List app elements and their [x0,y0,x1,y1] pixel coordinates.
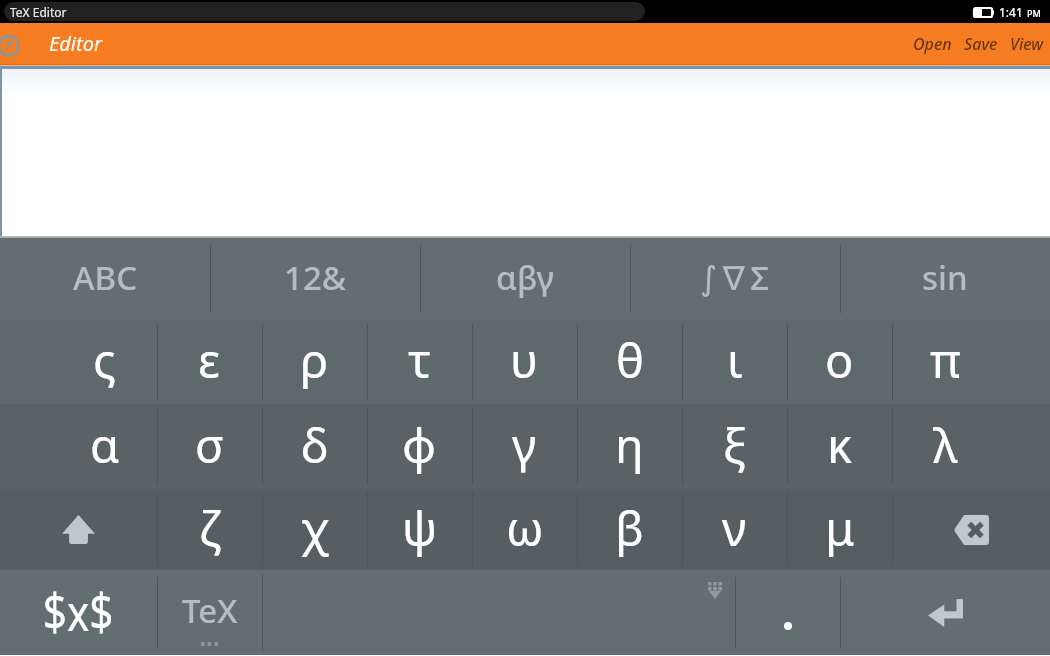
staticText: ζ [199,496,221,560]
button[interactable]: Enter [840,570,1050,655]
button[interactable]: Period [735,570,840,655]
staticText: π [930,328,961,392]
staticText: σ [195,413,224,477]
staticText: δ [301,413,329,477]
button[interactable]: α [0,404,157,489]
button[interactable]: φ [367,404,472,489]
staticText: ξ [723,413,747,477]
button[interactable]: ∫ ∇ Σ [630,238,840,320]
staticText: γ [512,413,537,477]
button[interactable]: ι [682,320,787,404]
staticText: ∫ ∇ Σ [700,255,770,300]
button[interactable]: λ [892,404,1050,489]
staticText: Open [913,33,952,55]
staticText: ε [198,328,221,392]
button[interactable]: θ [577,320,682,404]
staticText: $x$ [43,576,114,647]
staticText: ? [5,35,13,55]
button[interactable]: αβγ [420,238,630,320]
button[interactable]: ψ [367,489,472,570]
button[interactable]: π [892,320,1050,404]
button[interactable]: η [577,404,682,489]
staticText: ο [825,328,854,392]
staticText: ς [93,328,116,392]
button[interactable]: Backspace [892,489,1050,570]
staticText: χ [301,496,329,560]
staticText: μ [825,496,855,560]
button[interactable]: μ [787,489,892,570]
staticText: sin [922,255,968,300]
staticText: α [90,413,120,477]
button[interactable]: ω [472,489,577,570]
staticText: ω [506,496,544,560]
staticText: αβγ [496,255,555,300]
staticText: Save [964,33,998,55]
button[interactable]: TeX [157,570,262,655]
button[interactable]: τ [367,320,472,404]
button[interactable]: χ [262,489,367,570]
button[interactable]: κ [787,404,892,489]
button[interactable]: ε [157,320,262,404]
staticText: ψ [402,496,438,560]
staticText: PM [1027,7,1041,19]
button[interactable]: ρ [262,320,367,404]
staticText: TeX Editor [10,4,67,20]
staticText: τ [408,328,432,392]
staticText: ρ [300,328,329,392]
button[interactable]: $x$ [0,570,157,655]
button[interactable]: γ [472,404,577,489]
staticText: φ [402,413,437,477]
staticText: 12& [284,255,347,300]
button[interactable]: Shift [0,489,157,570]
button[interactable]: Save [958,25,1004,63]
button[interactable]: View [1004,25,1050,63]
button[interactable]: ν [682,489,787,570]
staticText: β [615,496,644,560]
staticText: θ [616,328,644,392]
button[interactable]: Open [907,25,958,63]
staticText: ι [727,328,743,392]
button[interactable]: σ [157,404,262,489]
button[interactable]: ABC [0,238,210,320]
staticText: 1:41 [999,4,1023,20]
staticText: η [615,413,644,477]
staticText: Editor [49,30,102,57]
staticText: κ [827,413,853,477]
button[interactable]: sin [840,238,1050,320]
button[interactable]: ξ [682,404,787,489]
staticText: TeX [182,588,238,633]
button[interactable]: ς [0,320,157,404]
staticText: View [1010,33,1044,55]
button[interactable]: ο [787,320,892,404]
button[interactable]: β [577,489,682,570]
staticText: λ [933,413,958,477]
button[interactable]: υ [472,320,577,404]
button[interactable]: δ [262,404,367,489]
staticText: ν [722,496,747,560]
button[interactable]: ζ [157,489,262,570]
button[interactable]: 12& [210,238,420,320]
staticText: υ [510,328,539,392]
staticText: ABC [73,255,138,300]
button[interactable]: Help [0,26,29,66]
